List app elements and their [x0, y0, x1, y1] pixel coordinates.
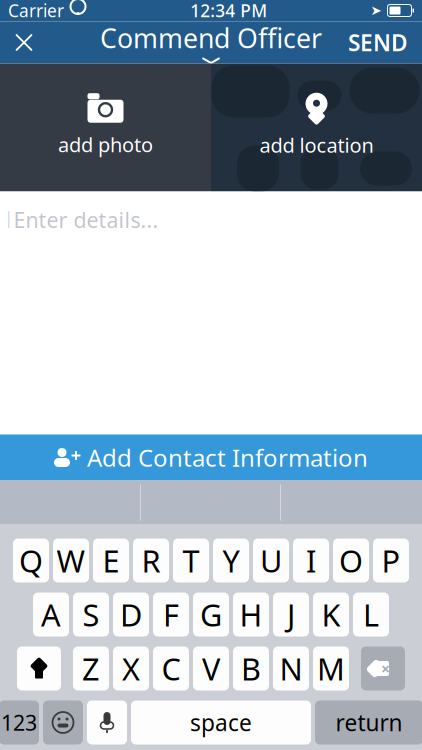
button[interactable]: R [133, 538, 169, 582]
staticText: R [141, 540, 160, 581]
staticText: ➤ [370, 3, 381, 18]
button[interactable]: I [293, 538, 329, 582]
staticText: N [279, 648, 302, 689]
staticText: add photo [58, 131, 153, 158]
staticText: Commend Officer [100, 20, 322, 56]
staticText: Y [222, 540, 239, 581]
button[interactable]: L [353, 592, 389, 636]
staticText: K [321, 594, 340, 635]
button[interactable]: B [233, 646, 269, 690]
staticText: X [122, 648, 140, 689]
button[interactable]: 123 [0, 700, 39, 744]
button[interactable]: SEND [334, 17, 422, 67]
button[interactable]: U [253, 538, 289, 582]
staticText: P [381, 540, 400, 581]
button[interactable]: S [73, 592, 109, 636]
button[interactable]: Dictate [87, 700, 127, 744]
staticText: × [381, 658, 390, 679]
staticText: 12:34 PM [190, 0, 267, 22]
staticText: Carrier [8, 0, 64, 22]
staticText: S [82, 594, 99, 635]
staticText: E [102, 540, 119, 581]
staticText: F [163, 594, 179, 635]
button[interactable]: K [313, 592, 349, 636]
staticText: O [339, 540, 363, 581]
staticText: T [182, 540, 199, 581]
button[interactable]: T [173, 538, 209, 582]
button[interactable]: E [93, 538, 129, 582]
button[interactable]: Shift [17, 646, 61, 690]
button[interactable]: Add Contact Information [0, 434, 422, 480]
staticText: space [190, 707, 252, 737]
button[interactable]: Q [13, 538, 49, 582]
staticText: add location [259, 132, 373, 158]
button[interactable]: add photo [0, 63, 211, 191]
staticText: J [287, 594, 295, 635]
button[interactable]: C [153, 646, 189, 690]
button[interactable]: A [33, 592, 69, 636]
button[interactable]: Z [73, 646, 109, 690]
staticText: Add Contact Information [87, 442, 368, 473]
staticText: D [120, 594, 142, 635]
button[interactable]: W [53, 538, 89, 582]
staticText: M [317, 648, 345, 689]
staticText: V [202, 648, 220, 689]
button[interactable]: O [333, 538, 369, 582]
staticText: W [56, 540, 85, 581]
staticText: return [335, 707, 402, 737]
button[interactable]: return [315, 700, 422, 744]
button[interactable]: M [313, 646, 349, 690]
staticText: Enter details... [13, 205, 158, 234]
button[interactable]: G [193, 592, 229, 636]
button[interactable]: N [273, 646, 309, 690]
button[interactable]: Delete [361, 646, 405, 690]
button[interactable]: V [193, 646, 229, 690]
button[interactable]: Close [0, 20, 48, 64]
staticText: H [239, 594, 262, 635]
button[interactable]: F [153, 592, 189, 636]
staticText: C [161, 648, 180, 689]
button[interactable]: P [373, 538, 409, 582]
staticText: B [241, 648, 261, 689]
button[interactable]: add location [211, 63, 422, 191]
staticText: SEND [348, 27, 408, 57]
staticText: U [260, 540, 282, 581]
staticText: L [363, 594, 379, 635]
button[interactable]: J [273, 592, 309, 636]
staticText: 123 [1, 708, 37, 737]
button[interactable]: space [131, 700, 311, 744]
staticText: A [41, 594, 61, 635]
staticText: Q [19, 540, 43, 581]
staticText: Z [82, 648, 100, 689]
button[interactable]: Emoji [43, 700, 83, 744]
button[interactable]: X [113, 646, 149, 690]
button[interactable]: D [113, 592, 149, 636]
staticText: I [306, 540, 316, 581]
staticText: G [200, 594, 222, 635]
button[interactable]: Y [213, 538, 249, 582]
button[interactable]: H [233, 592, 269, 636]
